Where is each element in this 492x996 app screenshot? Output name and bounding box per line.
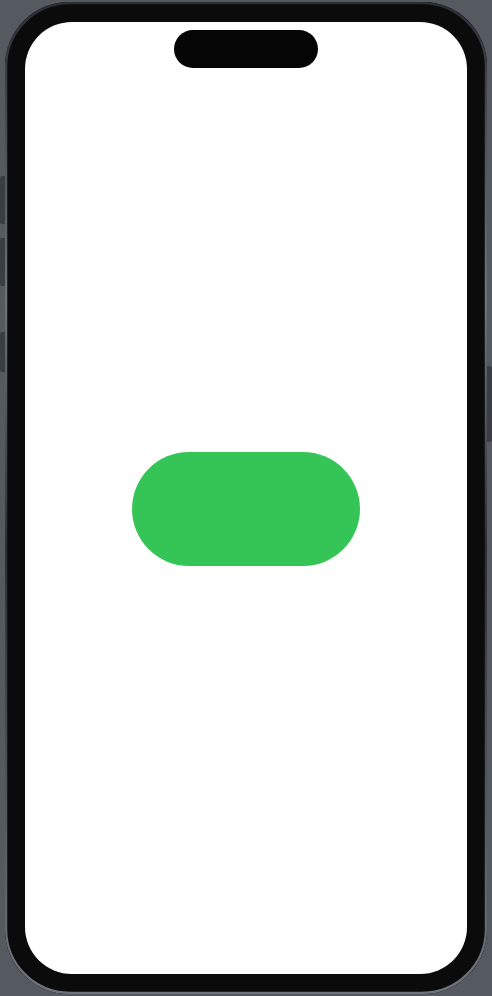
button[interactable]: Volume down — [0, 238, 8, 286]
button[interactable]: Volume up — [0, 176, 8, 224]
button[interactable]: Green button — [132, 452, 360, 566]
button[interactable]: Action button — [0, 332, 8, 372]
button[interactable]: Power — [484, 366, 492, 442]
